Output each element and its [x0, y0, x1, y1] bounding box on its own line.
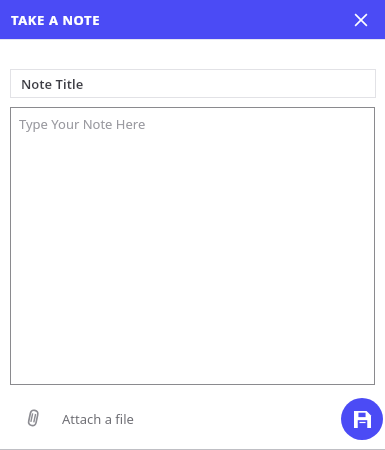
button[interactable]: Type Your Note Here: [10, 107, 375, 385]
button[interactable]: Save note: [341, 398, 383, 440]
staticText: TAKE A NOTE: [11, 11, 101, 29]
staticText: Attach a file: [62, 410, 134, 428]
button[interactable]: Note Title: [10, 69, 376, 98]
staticText: Type Your Note Here: [19, 115, 146, 133]
staticText: Note Title: [21, 75, 84, 93]
button[interactable]: Close: [346, 5, 376, 35]
button[interactable]: Attach a file: [18, 404, 134, 434]
